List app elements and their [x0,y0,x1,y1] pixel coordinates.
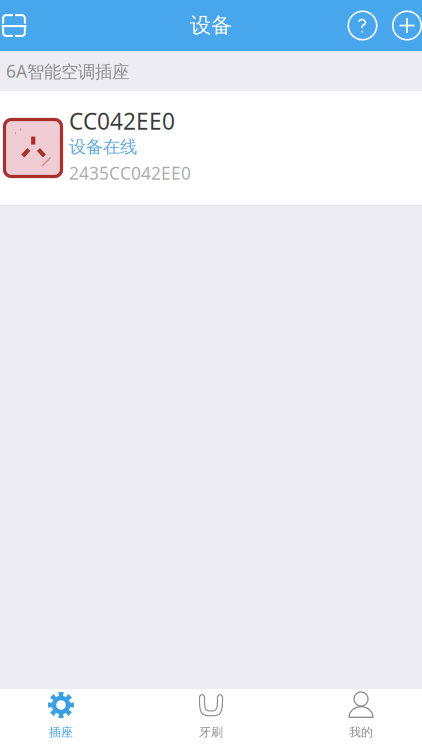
staticText: 设备在线 [69,136,137,158]
staticText: 我的 [349,725,373,740]
button[interactable]: 插座 [0,689,122,750]
staticText: 6A智能空调插座 [6,59,129,82]
button[interactable]: Help [333,0,392,51]
button[interactable]: CC042EE0 [0,91,422,205]
button[interactable]: 牙刷 [150,689,272,750]
button[interactable]: Scan QR code [0,0,29,51]
button[interactable]: Add device [392,0,422,51]
staticText: 设备 [190,12,232,39]
staticText: 2435CC042EE0 [69,161,191,184]
staticText: CC042EE0 [69,106,175,136]
staticText: 牙刷 [199,725,223,740]
staticText: 插座 [49,725,73,740]
button[interactable]: 我的 [300,689,422,750]
